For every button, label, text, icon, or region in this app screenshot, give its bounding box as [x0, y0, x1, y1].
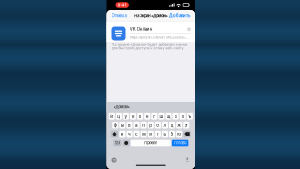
button[interactable]: л — [162, 122, 168, 128]
staticText: к — [132, 114, 134, 119]
staticText: ы — [121, 122, 124, 128]
staticText: Пробел — [144, 141, 157, 145]
button[interactable]: т — [155, 131, 161, 137]
staticText: а — [135, 122, 138, 128]
button[interactable]: ц — [116, 113, 122, 120]
staticText: ч — [128, 131, 131, 137]
button[interactable]: ш — [158, 113, 164, 120]
staticText: На экране «Домой» будет добавлен значок … — [111, 42, 187, 50]
button[interactable]: б — [169, 131, 175, 137]
button[interactable]: д — [169, 122, 175, 128]
staticText: м — [142, 131, 145, 137]
staticText: ж — [177, 122, 181, 128]
button[interactable]: Shift — [111, 131, 118, 137]
staticText: н — [146, 114, 149, 119]
button[interactable]: Clear text — [186, 27, 191, 32]
button[interactable]: й — [109, 113, 115, 120]
button[interactable]: я — [119, 131, 125, 137]
button[interactable]: е — [137, 113, 143, 120]
staticText: Отмена — [111, 13, 126, 18]
button[interactable]: Emoji — [106, 158, 116, 163]
staticText: х — [182, 114, 184, 119]
staticText: VK Онлайн — [130, 27, 153, 32]
button[interactable]: Numbers — [113, 140, 122, 146]
button[interactable]: Добавить — [167, 12, 192, 20]
staticText: р — [149, 122, 152, 128]
staticText: о — [156, 122, 159, 128]
button[interactable]: а — [133, 122, 140, 128]
button[interactable]: ю — [176, 131, 182, 137]
staticText: с — [135, 131, 138, 137]
button[interactable]: п — [141, 122, 147, 128]
button[interactable]: з — [173, 113, 179, 120]
staticText: й — [110, 114, 113, 119]
staticText: ю — [177, 131, 181, 137]
staticText: щ — [166, 114, 170, 119]
staticText: у — [124, 114, 127, 119]
button[interactable]: ь — [162, 131, 168, 137]
staticText: ъ — [188, 114, 191, 119]
staticText: з — [175, 114, 177, 119]
staticText: https://polziki.site/vk?utm_source=post — [130, 35, 190, 39]
button[interactable]: Next keyboard — [123, 140, 129, 146]
staticText: я — [121, 131, 124, 137]
button[interactable]: ъ — [187, 113, 193, 120]
button[interactable]: Пробел — [131, 140, 171, 146]
staticText: ь — [163, 131, 166, 137]
staticText: п — [142, 122, 145, 128]
button[interactable]: с — [133, 131, 140, 137]
button[interactable]: Delete — [183, 131, 191, 137]
button[interactable]: р — [148, 122, 154, 128]
staticText: ш — [159, 114, 163, 119]
staticText: б — [171, 131, 174, 137]
button[interactable]: ы — [119, 122, 125, 128]
staticText: ф — [114, 122, 117, 128]
staticText: На экран «Домой» — [134, 13, 167, 18]
button[interactable]: Отмена — [109, 12, 128, 20]
button[interactable]: к — [130, 113, 136, 120]
button[interactable]: э — [183, 122, 189, 128]
staticText: э — [185, 122, 188, 128]
staticText: Готово — [174, 141, 186, 145]
staticText: «Домой» — [113, 105, 129, 109]
button[interactable]: и — [148, 131, 154, 137]
button[interactable]: щ — [165, 113, 171, 120]
staticText: е — [139, 114, 142, 119]
button[interactable]: х — [180, 113, 186, 120]
button[interactable]: у — [123, 113, 129, 120]
button[interactable]: в — [126, 122, 132, 128]
staticText: л — [163, 122, 166, 128]
button[interactable]: н — [144, 113, 150, 120]
staticText: г — [153, 114, 155, 119]
button[interactable]: ж — [176, 122, 182, 128]
button[interactable]: м — [141, 131, 147, 137]
staticText: 123 — [115, 141, 120, 145]
button[interactable]: ф — [112, 122, 118, 128]
staticText: и — [149, 131, 152, 137]
staticText: т — [157, 131, 159, 137]
button[interactable]: Dictate — [186, 158, 195, 163]
button[interactable]: о — [155, 122, 161, 128]
button[interactable]: г — [151, 113, 157, 120]
button[interactable]: ч — [126, 131, 132, 137]
staticText: ц — [117, 114, 120, 119]
staticText: Добавить — [169, 13, 190, 18]
button[interactable]: Готово — [172, 140, 188, 146]
staticText: 9:41 — [118, 3, 127, 7]
staticText: д — [171, 122, 174, 128]
staticText: в — [128, 122, 131, 128]
